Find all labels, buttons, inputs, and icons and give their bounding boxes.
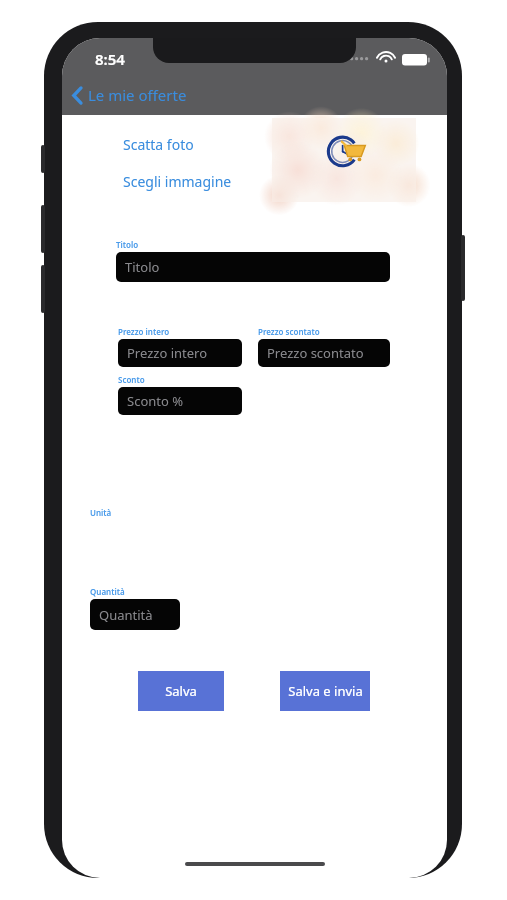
staticText: Le mie offerte bbox=[88, 85, 187, 105]
button[interactable]: Prezzo scontato bbox=[258, 339, 390, 367]
staticText: Scegli immagine bbox=[123, 172, 232, 191]
staticText: Prezzo scontato bbox=[258, 326, 320, 337]
button[interactable]: Scatta foto bbox=[123, 133, 194, 156]
staticText: 8:54 bbox=[95, 49, 125, 69]
staticText: Quantità bbox=[90, 586, 125, 597]
staticText: Salva e invia bbox=[288, 682, 363, 700]
staticText: Scatta foto bbox=[123, 135, 194, 154]
staticText: Titolo bbox=[116, 239, 139, 250]
staticText: Sconto bbox=[118, 374, 145, 385]
staticText: Quantità bbox=[99, 606, 153, 624]
button[interactable]: Salva e invia bbox=[280, 671, 370, 711]
staticText: Prezzo intero bbox=[118, 326, 170, 337]
staticText: Sconto % bbox=[127, 392, 184, 410]
button[interactable]: Quantità bbox=[90, 599, 180, 630]
button[interactable]: Scegli immagine bbox=[123, 170, 232, 193]
button[interactable]: Le mie offerte bbox=[62, 78, 187, 112]
staticText: Titolo bbox=[125, 258, 160, 276]
staticText: Salva bbox=[165, 682, 197, 700]
staticText: Prezzo intero bbox=[127, 344, 208, 362]
button[interactable]: Prezzo intero bbox=[118, 339, 242, 367]
button[interactable]: Titolo bbox=[116, 252, 390, 282]
staticText: Unità bbox=[90, 507, 112, 518]
other: Notch bbox=[153, 38, 356, 63]
button[interactable]: Salva bbox=[138, 671, 224, 711]
staticText: Prezzo scontato bbox=[267, 344, 364, 362]
button[interactable]: Sconto % bbox=[118, 387, 242, 415]
